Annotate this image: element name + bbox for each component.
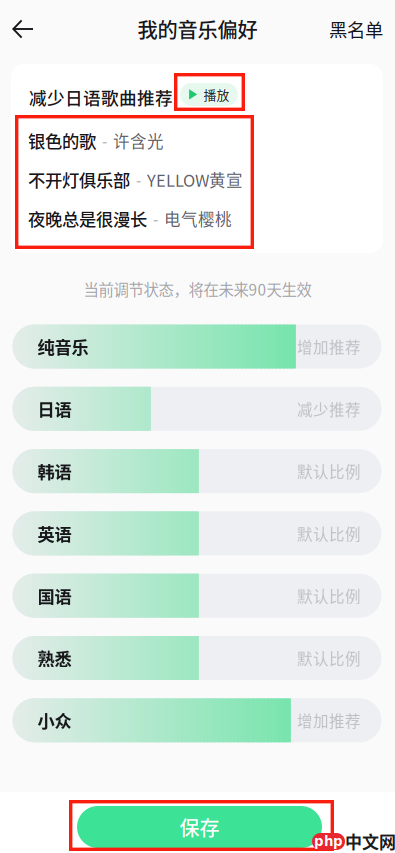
staticText: 保存 [179,812,219,841]
button[interactable]: 熟悉 [12,636,381,680]
staticText: php [314,834,343,849]
staticText: YELLOW黄宣 [147,168,243,191]
staticText: 小众 [37,708,71,733]
staticText: 默认比例 [297,522,361,545]
staticText: 当前调节状态，将在未来90天生效 [83,278,311,300]
button[interactable]: 国语 [12,574,381,618]
staticText: 减少推荐 [297,398,361,420]
staticText: 许含光 [113,129,164,152]
button[interactable]: 日语 [12,387,381,431]
staticText: 日语 [37,396,71,421]
staticText: 银色的歌 [28,128,96,153]
staticText: - [147,207,164,230]
staticText: 播放 [203,85,229,104]
staticText: 不开灯俱乐部 [28,167,130,192]
button[interactable]: Back [0,6,46,52]
staticText: 黑名单 [329,16,383,42]
staticText: - [96,129,113,152]
staticText: 纯音乐 [37,334,88,359]
staticText: 韩语 [37,459,71,483]
button[interactable]: 播放 [180,83,238,106]
button[interactable]: 韩语 [12,449,381,493]
button[interactable]: 英语 [12,511,381,555]
staticText: 我的音乐偏好 [137,14,257,44]
staticText: 熟悉 [37,645,71,670]
button[interactable]: 保存 [77,806,322,848]
button[interactable]: 黑名单 [319,6,393,52]
staticText: 默认比例 [297,584,361,607]
staticText: 夜晚总是很漫长 [28,206,147,231]
staticText: 中文网 [345,829,395,853]
staticText: 电气樱桃 [164,207,232,230]
staticText: 国语 [37,583,71,608]
staticText: 英语 [37,521,71,546]
staticText: 增加推荐 [297,335,361,358]
staticText: - [130,168,147,191]
staticText: 减少日语歌曲推荐 [29,84,173,110]
button[interactable]: 纯音乐 [12,324,381,368]
button[interactable]: 小众 [12,698,381,742]
staticText: 默认比例 [297,647,361,669]
staticText: 增加推荐 [297,709,361,731]
staticText: 默认比例 [297,460,361,482]
